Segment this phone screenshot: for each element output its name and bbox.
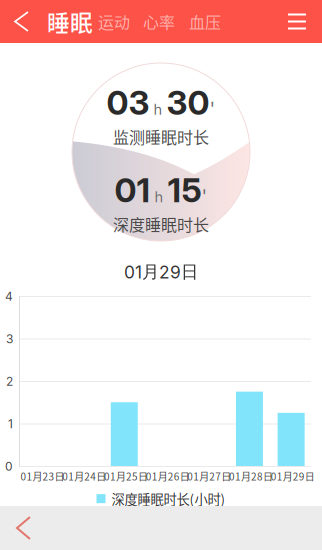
staticText: 30 bbox=[166, 82, 209, 123]
button[interactable]: 睡眠 bbox=[44, 0, 96, 43]
staticText: 1 bbox=[8, 417, 13, 431]
staticText: 深度睡眠时长 bbox=[113, 212, 209, 235]
button[interactable]: Back bbox=[0, 0, 42, 43]
staticText: 4 bbox=[5, 289, 13, 304]
staticText: 3 bbox=[6, 332, 13, 346]
staticText: 01月24日 bbox=[62, 469, 106, 483]
staticText: 心率 bbox=[143, 10, 175, 33]
staticText: 01月27日 bbox=[187, 469, 231, 483]
staticText: ' bbox=[201, 184, 207, 207]
staticText: 01月28日 bbox=[229, 469, 273, 483]
button[interactable]: 运动 bbox=[91, 0, 137, 43]
staticText: 01 bbox=[114, 170, 150, 210]
staticText: 15 bbox=[167, 170, 201, 210]
staticText: 血压 bbox=[189, 10, 221, 33]
staticText: 2 bbox=[6, 374, 13, 389]
button[interactable]: Menu bbox=[275, 0, 319, 43]
staticText: 01月23日 bbox=[20, 469, 64, 483]
staticText: 01月26日 bbox=[146, 469, 190, 483]
button[interactable]: Back bbox=[0, 506, 50, 550]
staticText: 0 bbox=[5, 459, 13, 474]
button[interactable]: 心率 bbox=[136, 0, 182, 43]
staticText: 03 bbox=[106, 82, 149, 123]
staticText: 睡眠 bbox=[47, 5, 93, 38]
staticText: 深度睡眠时长(小时) bbox=[111, 489, 225, 508]
staticText: ' bbox=[209, 97, 215, 119]
staticText: h bbox=[150, 188, 167, 206]
staticText: 监测睡眠时长 bbox=[113, 125, 209, 148]
staticText: 运动 bbox=[98, 10, 130, 33]
button[interactable]: 血压 bbox=[182, 0, 228, 43]
staticText: 01月29日 bbox=[124, 261, 198, 283]
staticText: 01月25日 bbox=[104, 469, 148, 483]
staticText: h bbox=[149, 101, 166, 118]
staticText: 01月29日 bbox=[271, 469, 315, 483]
